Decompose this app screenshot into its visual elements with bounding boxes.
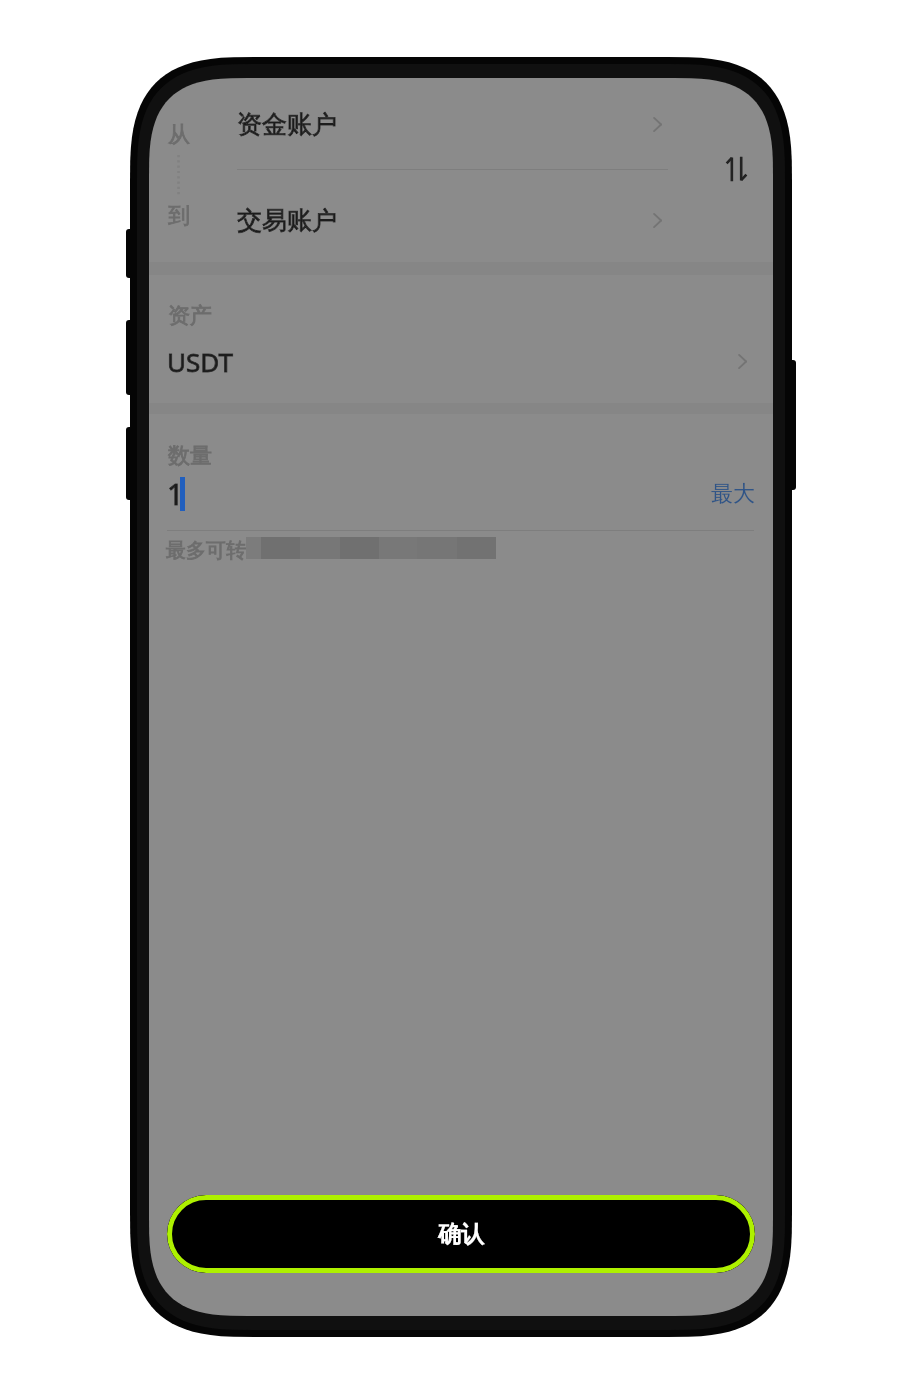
- staticText: USDT: [167, 344, 233, 379]
- staticText: 1: [167, 474, 184, 513]
- staticText: USDT: [167, 344, 233, 379]
- staticText: 交易账户: [237, 205, 337, 236]
- staticText: 资金账户: [237, 109, 337, 140]
- button[interactable]: USDT: [167, 340, 747, 382]
- staticText: 资产: [168, 302, 212, 330]
- staticText: 到: [168, 202, 190, 230]
- staticText: 资产: [168, 302, 212, 330]
- staticText: 最多可转: [166, 538, 246, 563]
- button[interactable]: 交易账户: [237, 188, 685, 252]
- staticText: 数量: [168, 442, 212, 470]
- staticText: 最大: [711, 480, 755, 508]
- staticText: 从: [168, 121, 190, 149]
- staticText: 到: [168, 202, 190, 230]
- staticText: 资金账户: [237, 109, 337, 140]
- staticText: 数量: [168, 442, 212, 470]
- button[interactable]: 资金账户: [237, 92, 685, 156]
- staticText: 交易账户: [237, 205, 337, 236]
- staticText: 最多可转: [166, 538, 246, 563]
- staticText: 1: [167, 474, 184, 513]
- button[interactable]: 确认: [167, 1195, 755, 1273]
- button[interactable]: 1: [167, 470, 697, 514]
- staticText: 从: [168, 121, 190, 149]
- staticText: 确认: [438, 1220, 484, 1249]
- button[interactable]: Swap from and to accounts: [713, 146, 759, 192]
- button[interactable]: 最大: [711, 474, 763, 514]
